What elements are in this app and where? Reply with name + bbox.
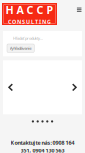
staticText: Vyhľadávanie xyxy=(10,45,32,51)
button[interactable]: H A C C P xyxy=(2,3,57,25)
button[interactable]: Previous slide xyxy=(5,78,16,96)
staticText: Hľadať produkty... xyxy=(13,35,43,41)
button[interactable]: Next slide xyxy=(69,78,80,96)
button[interactable]: Vyhľadávanie xyxy=(7,44,34,52)
staticText: Kontaktujte nás: 0908 164 xyxy=(10,139,74,146)
button[interactable]: Menu xyxy=(73,3,85,16)
staticText: H A C C P xyxy=(5,3,53,17)
staticText: C O N S U L T I N G xyxy=(8,18,51,25)
staticText: 351, 0904 130 563 xyxy=(20,147,64,153)
